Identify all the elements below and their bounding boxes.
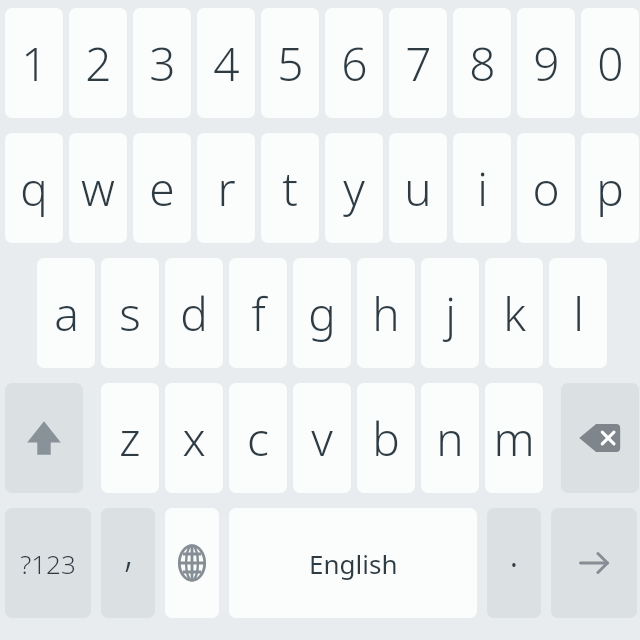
- staticText: u: [404, 157, 432, 220]
- staticText: k: [503, 282, 526, 345]
- button[interactable]: s: [101, 258, 159, 368]
- button[interactable]: 8: [453, 8, 511, 118]
- staticText: 5: [277, 32, 304, 95]
- button[interactable]: f: [229, 258, 287, 368]
- staticText: n: [436, 407, 464, 470]
- button[interactable]: i: [453, 133, 511, 243]
- staticText: c: [247, 407, 269, 470]
- button[interactable]: 7: [389, 8, 447, 118]
- button[interactable]: b: [357, 383, 415, 493]
- staticText: 3: [149, 32, 176, 95]
- button[interactable]: 3: [133, 8, 191, 118]
- staticText: h: [372, 282, 400, 345]
- staticText: 2: [85, 32, 112, 95]
- button[interactable]: l: [549, 258, 607, 368]
- button[interactable]: k: [485, 258, 543, 368]
- staticText: w: [81, 157, 115, 220]
- button[interactable]: Shift: [5, 383, 83, 493]
- button[interactable]: 5: [261, 8, 319, 118]
- staticText: m: [493, 407, 535, 470]
- staticText: English: [309, 546, 398, 581]
- staticText: e: [149, 157, 175, 220]
- button[interactable]: 9: [517, 8, 575, 118]
- button[interactable]: d: [165, 258, 223, 368]
- staticText: t: [282, 157, 298, 220]
- button[interactable]: e: [133, 133, 191, 243]
- button[interactable]: 4: [197, 8, 255, 118]
- staticText: r: [217, 157, 236, 220]
- button[interactable]: m: [485, 383, 543, 493]
- button[interactable]: ,: [101, 508, 155, 618]
- staticText: i: [477, 157, 488, 220]
- button[interactable]: ?123: [5, 508, 91, 618]
- button[interactable]: c: [229, 383, 287, 493]
- staticText: 9: [533, 32, 560, 95]
- staticText: b: [372, 407, 400, 470]
- staticText: p: [596, 157, 624, 220]
- staticText: l: [573, 282, 584, 345]
- button[interactable]: Backspace: [561, 383, 639, 493]
- button[interactable]: u: [389, 133, 447, 243]
- staticText: a: [54, 282, 79, 345]
- button[interactable]: p: [581, 133, 639, 243]
- button[interactable]: h: [357, 258, 415, 368]
- button[interactable]: 1: [5, 8, 63, 118]
- staticText: ,: [124, 524, 133, 578]
- button[interactable]: v: [293, 383, 351, 493]
- staticText: v: [311, 407, 333, 470]
- button[interactable]: English: [229, 508, 477, 618]
- staticText: x: [182, 407, 206, 470]
- staticText: 6: [341, 32, 368, 95]
- button[interactable]: o: [517, 133, 575, 243]
- button[interactable]: g: [293, 258, 351, 368]
- button[interactable]: y: [325, 133, 383, 243]
- staticText: j: [445, 282, 456, 345]
- staticText: ?123: [20, 546, 76, 581]
- button[interactable]: .: [487, 508, 541, 618]
- button[interactable]: x: [165, 383, 223, 493]
- staticText: f: [251, 282, 266, 345]
- staticText: d: [180, 282, 208, 345]
- button[interactable]: Enter: [551, 508, 637, 618]
- staticText: s: [119, 282, 141, 345]
- staticText: 7: [405, 32, 432, 95]
- button[interactable]: w: [69, 133, 127, 243]
- button[interactable]: t: [261, 133, 319, 243]
- button[interactable]: 2: [69, 8, 127, 118]
- button[interactable]: n: [421, 383, 479, 493]
- button[interactable]: 0: [581, 8, 639, 118]
- staticText: q: [20, 157, 48, 220]
- button[interactable]: a: [37, 258, 95, 368]
- staticText: y: [343, 157, 365, 220]
- button[interactable]: Change language: [165, 508, 219, 618]
- button[interactable]: z: [101, 383, 159, 493]
- button[interactable]: r: [197, 133, 255, 243]
- button[interactable]: q: [5, 133, 63, 243]
- staticText: 4: [213, 32, 240, 95]
- staticText: z: [119, 407, 141, 470]
- staticText: 8: [469, 32, 496, 95]
- staticText: .: [509, 524, 519, 578]
- button[interactable]: j: [421, 258, 479, 368]
- staticText: o: [532, 157, 560, 220]
- staticText: 1: [21, 32, 48, 95]
- button[interactable]: 6: [325, 8, 383, 118]
- staticText: g: [308, 282, 336, 345]
- staticText: 0: [597, 32, 624, 95]
